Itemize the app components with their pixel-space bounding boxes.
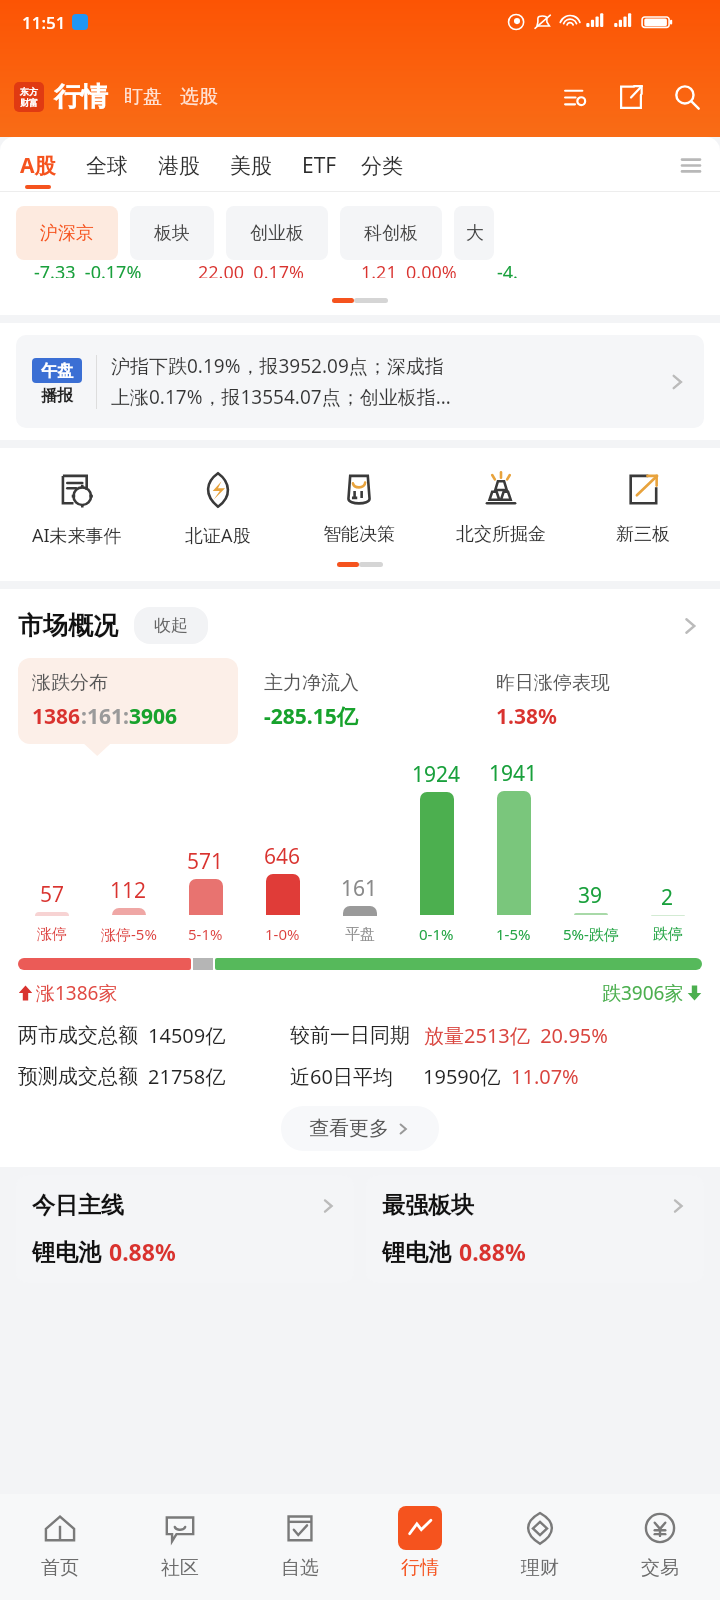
button[interactable]: 港股 <box>158 153 200 188</box>
staticText: 交易 <box>641 1556 679 1580</box>
staticText: 锂电池 <box>32 1238 101 1267</box>
button[interactable]: Filter settings <box>558 80 592 114</box>
staticText: 理财 <box>521 1556 559 1580</box>
staticText: 11:51 <box>22 11 66 34</box>
button[interactable]: 分类 <box>361 153 403 188</box>
staticText: 涨停-5% <box>101 924 157 944</box>
staticText: 查看更多 <box>309 1116 389 1141</box>
staticText: 22.00 0.17% <box>198 260 305 278</box>
button[interactable]: 北证A股 <box>147 468 288 548</box>
staticText: 跌3906家 <box>602 980 684 1006</box>
staticText: 571 <box>187 847 224 876</box>
staticText: 0.88% <box>459 1236 526 1267</box>
staticText: 0-1% <box>419 924 454 944</box>
button[interactable]: 首页 <box>0 1494 120 1600</box>
staticText: 14509亿 <box>148 1022 226 1049</box>
staticText: 收起 <box>154 615 188 636</box>
staticText: 涨停 <box>37 925 67 944</box>
staticText: 盯盘 <box>124 85 162 109</box>
staticText: 39 <box>578 881 603 910</box>
button[interactable]: 主力净流入 <box>250 658 470 744</box>
button[interactable]: 盯盘 <box>122 85 164 109</box>
staticText: 3906 <box>129 702 178 731</box>
staticText: 1-5% <box>496 924 531 944</box>
button[interactable]: AI未来事件 <box>6 468 147 548</box>
staticText: 昨日涨停表现 <box>496 671 610 695</box>
button[interactable]: 科创板 <box>340 206 442 260</box>
staticText: 行情 <box>401 1556 439 1580</box>
button[interactable]: 板块 <box>130 206 214 260</box>
staticText: 1.38% <box>496 702 557 731</box>
button[interactable]: 收起 <box>134 607 208 644</box>
button[interactable]: 自选 <box>240 1494 360 1600</box>
staticText: 大 <box>466 222 484 245</box>
staticText: 21758亿 <box>148 1063 226 1090</box>
button[interactable]: 涨跌分布 <box>18 658 238 744</box>
button[interactable]: 沪深京 <box>16 206 118 260</box>
staticText: 19590亿 <box>423 1063 501 1090</box>
staticText: 最强板块 <box>382 1191 474 1220</box>
button[interactable]: 社区 <box>120 1494 240 1600</box>
button[interactable]: 今日主线 <box>16 1175 354 1283</box>
staticText: 放量2513亿 20.95% <box>424 1022 608 1049</box>
staticText: 港股 <box>158 153 200 179</box>
staticText: 播报 <box>41 386 73 406</box>
button[interactable]: 昨日涨停表现 <box>482 658 702 744</box>
button[interactable]: 大 <box>454 206 494 260</box>
button[interactable]: Search <box>670 80 704 114</box>
staticText: 自选 <box>281 1556 319 1580</box>
staticText: 两市成交总额 <box>18 1023 138 1048</box>
button[interactable]: 交易 <box>600 1494 720 1600</box>
staticText: ETF <box>302 151 337 180</box>
staticText: -4. <box>497 260 518 278</box>
staticText: 财富 <box>20 97 38 108</box>
staticText: 首页 <box>41 1556 79 1580</box>
staticText: 分类 <box>361 153 403 179</box>
button[interactable]: 智能决策 <box>288 468 430 546</box>
staticText: 全球 <box>86 153 128 179</box>
staticText: :161: <box>81 702 129 731</box>
button[interactable]: 午盘 <box>16 335 704 428</box>
staticText: -285.15亿 <box>264 702 358 731</box>
staticText: -7.33 -0.17% <box>34 260 142 278</box>
button[interactable]: 选股 <box>178 85 220 109</box>
staticText: AI未来事件 <box>32 523 122 548</box>
staticText: 北交所掘金 <box>456 523 546 546</box>
staticText: 1924 <box>412 760 461 789</box>
staticText: 午盘 <box>41 361 73 381</box>
staticText: A股 <box>20 151 56 180</box>
staticText: 1941 <box>489 759 538 788</box>
staticText: 近60日平均 <box>290 1063 393 1090</box>
staticText: 平盘 <box>345 925 375 944</box>
staticText: 11.07% <box>511 1063 579 1090</box>
button[interactable]: 创业板 <box>226 206 328 260</box>
button[interactable]: A股 <box>20 151 56 189</box>
staticText: 跌停 <box>653 925 683 944</box>
button[interactable]: 查看更多 <box>281 1106 439 1151</box>
staticText: 161 <box>341 874 378 903</box>
staticText: 东方 <box>20 86 38 97</box>
button[interactable]: 最强板块 <box>366 1175 704 1283</box>
button[interactable]: ETF <box>302 151 337 189</box>
staticText: 5%-跌停 <box>563 924 619 944</box>
staticText: 5-1% <box>188 924 223 944</box>
button[interactable]: 新三板 <box>572 468 714 546</box>
button[interactable]: 行情 <box>54 80 108 114</box>
staticText: 1.21 0.00% <box>361 260 457 278</box>
staticText: 57 <box>40 880 65 909</box>
button[interactable]: 行情 <box>360 1494 480 1600</box>
staticText: 主力净流入 <box>264 671 359 695</box>
staticText: 板块 <box>154 222 190 245</box>
staticText: 今日主线 <box>32 1191 124 1220</box>
button[interactable]: More tabs <box>676 155 706 185</box>
button[interactable]: Share <box>614 80 648 114</box>
button[interactable]: 市场概况 <box>0 607 720 644</box>
staticText: 沪指下跌0.19%，报3952.09点；深成指 <box>111 353 444 379</box>
button[interactable]: 美股 <box>230 153 272 188</box>
button[interactable]: 北交所掘金 <box>430 468 572 546</box>
button[interactable]: 全球 <box>86 153 128 188</box>
button[interactable]: 理财 <box>480 1494 600 1600</box>
staticText: 上涨0.17%，报13554.07点；创业板指… <box>111 384 451 410</box>
staticText: 较前一日同期 <box>290 1023 410 1048</box>
staticText: 预测成交总额 <box>18 1064 138 1089</box>
